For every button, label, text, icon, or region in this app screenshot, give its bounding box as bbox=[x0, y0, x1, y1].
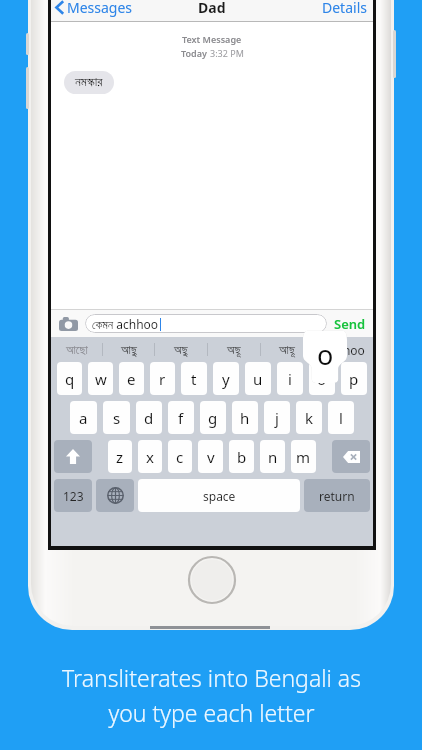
staticText: x bbox=[146, 447, 154, 467]
staticText: Text Message bbox=[182, 33, 242, 45]
staticText: e bbox=[127, 369, 136, 389]
button[interactable]: Shift bbox=[54, 440, 92, 473]
button[interactable]: Details bbox=[316, 0, 373, 21]
button[interactable]: g bbox=[200, 401, 226, 434]
staticText: d bbox=[144, 408, 154, 428]
staticText: আছু bbox=[121, 344, 137, 356]
staticText: j bbox=[275, 408, 279, 428]
staticText: m bbox=[296, 447, 311, 467]
button[interactable]: অছু bbox=[155, 337, 207, 362]
button[interactable]: c bbox=[168, 440, 192, 473]
staticText: f bbox=[178, 408, 184, 428]
button[interactable]: k bbox=[296, 401, 322, 434]
staticText: নমস্কার bbox=[75, 76, 103, 89]
button[interactable]: r bbox=[150, 362, 175, 395]
button[interactable]: space bbox=[138, 479, 300, 512]
button[interactable]: d bbox=[136, 401, 162, 434]
staticText: you type each letter bbox=[108, 697, 315, 728]
staticText: 3:32 PM bbox=[210, 47, 244, 59]
staticText: r bbox=[159, 369, 166, 389]
staticText: n bbox=[268, 447, 278, 467]
staticText: 123 bbox=[63, 488, 84, 504]
button[interactable]: Camera bbox=[51, 310, 85, 337]
staticText: i bbox=[288, 369, 292, 389]
button[interactable]: Send bbox=[327, 310, 373, 337]
staticText: g bbox=[208, 408, 218, 428]
button[interactable]: v bbox=[198, 440, 223, 473]
button[interactable]: w bbox=[88, 362, 113, 395]
staticText: Today bbox=[181, 47, 210, 59]
staticText: o bbox=[317, 336, 334, 373]
button[interactable]: h bbox=[232, 401, 258, 434]
button[interactable]: Backspace bbox=[332, 440, 370, 473]
button[interactable]: কেমন achhoo bbox=[85, 314, 327, 333]
button[interactable]: achhoo bbox=[314, 337, 373, 362]
button[interactable]: z bbox=[108, 440, 132, 473]
button[interactable]: নমস্কার bbox=[64, 71, 114, 94]
staticText: achhoo bbox=[323, 342, 365, 358]
staticText: অছূ bbox=[227, 344, 241, 356]
staticText: আছূ bbox=[279, 344, 295, 356]
button[interactable]: return bbox=[304, 479, 370, 512]
button[interactable]: 123 bbox=[54, 479, 92, 512]
button[interactable]: আছো bbox=[51, 337, 102, 362]
button[interactable]: t bbox=[181, 362, 207, 395]
staticText: h bbox=[240, 408, 250, 428]
button[interactable]: p bbox=[341, 362, 367, 395]
button[interactable]: o bbox=[309, 362, 335, 395]
button[interactable]: s bbox=[103, 401, 130, 434]
staticText: p bbox=[349, 369, 359, 389]
staticText: b bbox=[237, 447, 247, 467]
button[interactable]: আছূ bbox=[261, 337, 313, 362]
button[interactable]: l bbox=[328, 401, 354, 434]
button[interactable]: b bbox=[229, 440, 254, 473]
staticText: v bbox=[207, 447, 215, 467]
button[interactable]: আছু bbox=[103, 337, 154, 362]
staticText: Transliterates into Bengali as bbox=[62, 662, 361, 693]
staticText: return bbox=[319, 488, 355, 504]
staticText: Messages bbox=[67, 0, 133, 17]
staticText: Dad bbox=[198, 0, 226, 17]
staticText: k bbox=[305, 408, 314, 428]
button[interactable]: u bbox=[245, 362, 271, 395]
staticText: আছো bbox=[66, 344, 88, 356]
button[interactable]: অছূ bbox=[208, 337, 260, 362]
staticText: a bbox=[79, 408, 88, 428]
staticText: q bbox=[65, 369, 75, 389]
staticText: u bbox=[253, 369, 263, 389]
button[interactable]: m bbox=[291, 440, 316, 473]
button[interactable]: f bbox=[168, 401, 194, 434]
staticText: c bbox=[176, 447, 184, 467]
button[interactable]: j bbox=[264, 401, 290, 434]
button[interactable]: q bbox=[57, 362, 82, 395]
staticText: space bbox=[203, 488, 236, 504]
button[interactable]: x bbox=[138, 440, 162, 473]
staticText: w bbox=[95, 369, 107, 389]
staticText: l bbox=[339, 408, 343, 428]
button[interactable]: i bbox=[277, 362, 303, 395]
button[interactable]: Switch keyboard bbox=[96, 479, 134, 512]
staticText: কেমন achhoo bbox=[92, 316, 159, 332]
staticText: Send bbox=[334, 315, 366, 333]
button[interactable]: e bbox=[119, 362, 144, 395]
staticText: Details bbox=[322, 0, 367, 17]
staticText: t bbox=[191, 369, 197, 389]
staticText: s bbox=[113, 408, 121, 428]
button[interactable]: a bbox=[70, 401, 97, 434]
staticText: y bbox=[222, 369, 230, 389]
button[interactable]: Messages bbox=[51, 0, 373, 21]
button[interactable]: y bbox=[213, 362, 239, 395]
staticText: o bbox=[317, 369, 327, 389]
staticText: অছু bbox=[174, 344, 188, 356]
staticText: z bbox=[116, 447, 124, 467]
button[interactable]: n bbox=[260, 440, 285, 473]
